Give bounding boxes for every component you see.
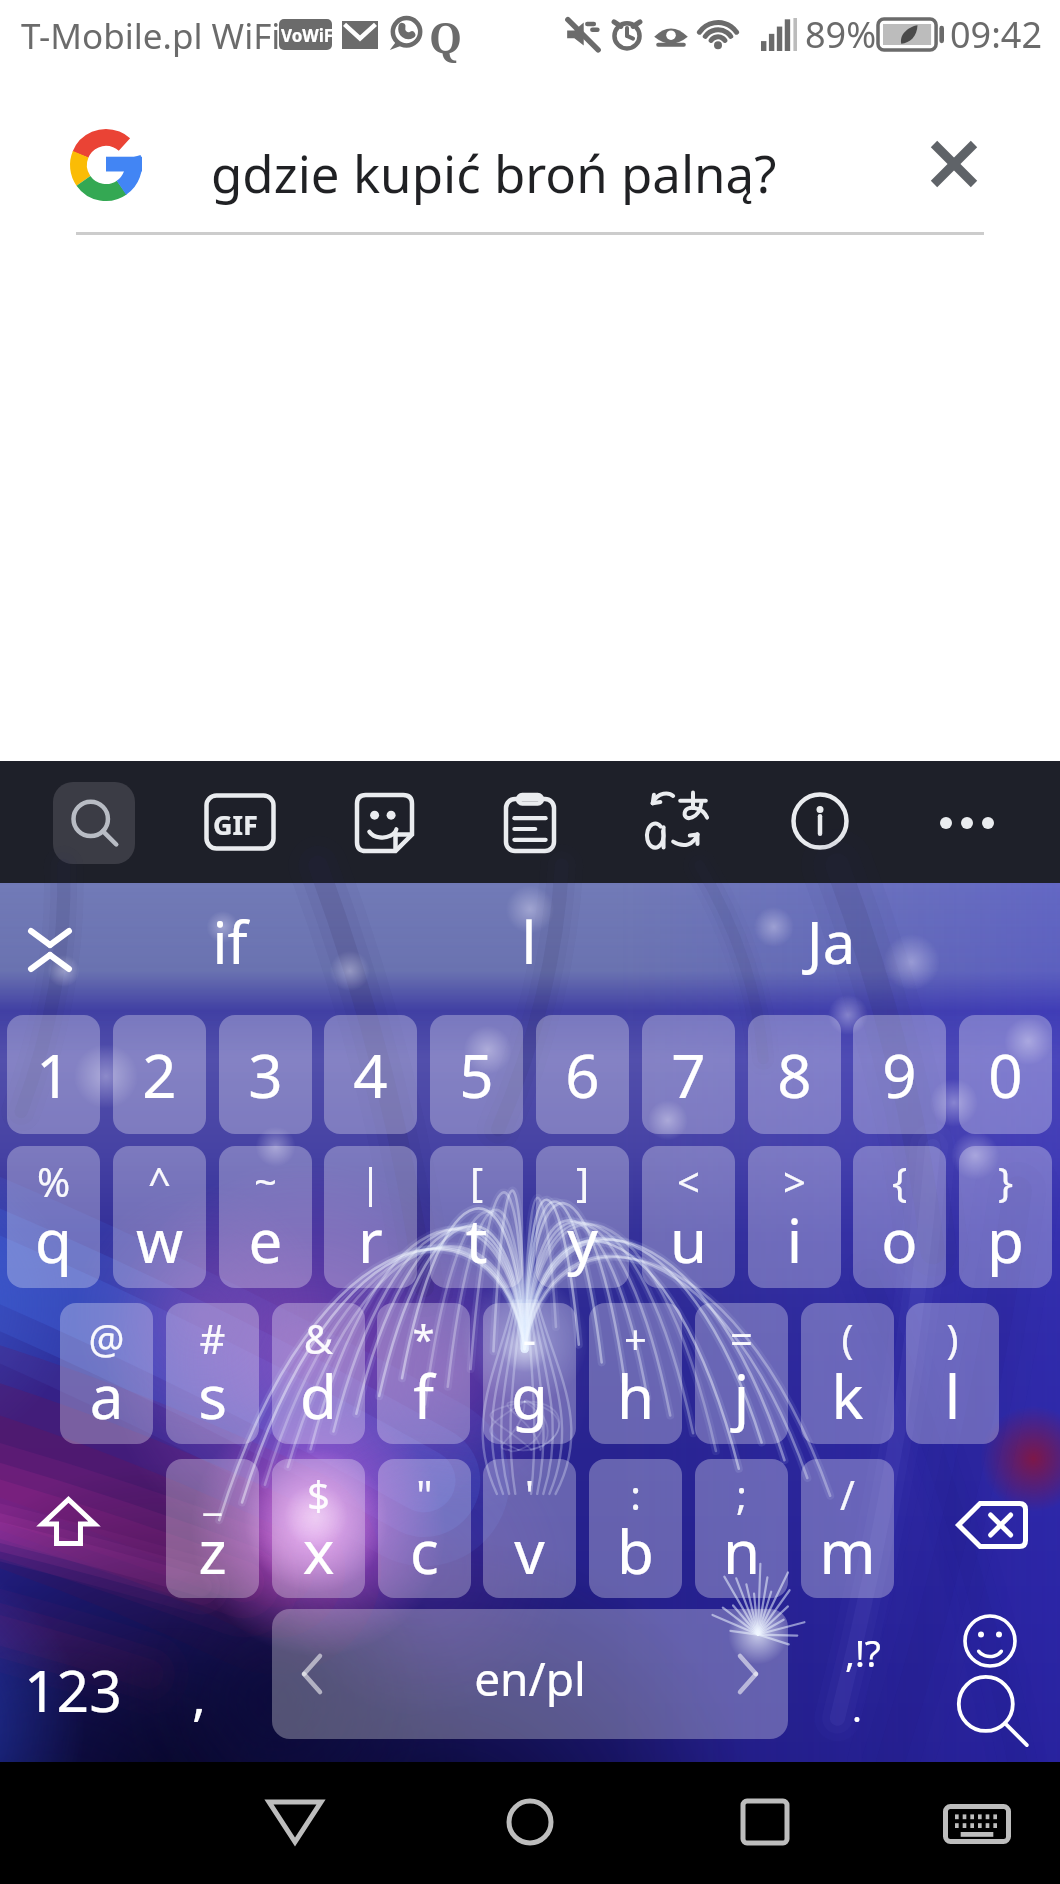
button[interactable]: { [853, 1146, 946, 1288]
staticText: 7 [642, 1034, 735, 1116]
button[interactable]: 7 [642, 1015, 735, 1134]
button[interactable]: More options [932, 789, 1002, 857]
button[interactable]: + [589, 1303, 682, 1444]
staticText: e [219, 1199, 312, 1281]
staticText: a [60, 1355, 153, 1437]
button[interactable]: Recents [740, 1798, 790, 1846]
button[interactable]: - [483, 1303, 576, 1444]
staticText: Q [429, 8, 463, 65]
staticText: p [959, 1199, 1052, 1281]
staticText: q [7, 1199, 100, 1281]
button[interactable]: 2 [113, 1015, 206, 1134]
button[interactable]: 6 [536, 1015, 629, 1134]
button[interactable]: ' [483, 1459, 576, 1598]
button[interactable]: 123 [4, 1609, 144, 1739]
staticText: . [852, 1682, 862, 1732]
button[interactable]: Clipboard [504, 793, 556, 853]
button[interactable]: if [130, 887, 330, 1007]
button[interactable]: 4 [324, 1015, 417, 1134]
staticText: s [166, 1355, 259, 1437]
staticText: * [377, 1311, 470, 1365]
button[interactable]: Hide keyboard [943, 1804, 1011, 1844]
staticText: l [906, 1355, 999, 1437]
staticText: { [853, 1154, 946, 1208]
button[interactable]: ( [801, 1303, 894, 1444]
button[interactable]: Stickers [357, 795, 412, 851]
button[interactable]: Search [53, 782, 135, 864]
button[interactable]: & [272, 1303, 365, 1444]
button[interactable]: ) [906, 1303, 999, 1444]
button[interactable]: l [429, 887, 629, 1007]
staticText: ( [801, 1311, 894, 1365]
staticText: $ [272, 1467, 365, 1521]
staticText: u [642, 1199, 735, 1281]
button[interactable]: " [378, 1459, 471, 1598]
staticText: x [272, 1510, 365, 1592]
button[interactable]: Comma [160, 1609, 256, 1739]
button[interactable]: ~ [219, 1146, 312, 1288]
staticText: / [801, 1467, 894, 1521]
button[interactable]: Backspace [956, 1501, 1028, 1549]
button[interactable]: en/pl [272, 1609, 788, 1739]
staticText: # [166, 1311, 259, 1365]
button[interactable]: [ [430, 1146, 523, 1288]
staticText: : [589, 1467, 682, 1521]
button[interactable]: ] [536, 1146, 629, 1288]
staticText: f [377, 1355, 470, 1437]
button[interactable]: Search [948, 1667, 1032, 1755]
staticText: _ [166, 1467, 259, 1521]
button[interactable]: * [377, 1303, 470, 1444]
button[interactable]: GIF [204, 793, 276, 851]
staticText: < [642, 1154, 735, 1208]
button[interactable]: = [695, 1303, 788, 1444]
button[interactable]: < [642, 1146, 735, 1288]
button[interactable]: Back [266, 1798, 324, 1846]
staticText: 8 [748, 1034, 841, 1116]
button[interactable]: 1 [7, 1015, 100, 1134]
staticText: 0 [959, 1034, 1052, 1116]
staticText: T-Mobile.pl WiFi [21, 12, 281, 60]
staticText: ) [906, 1311, 999, 1365]
button[interactable]: Shift [40, 1496, 97, 1546]
staticText: > [748, 1154, 841, 1208]
staticText: j [695, 1355, 788, 1437]
button[interactable]: } [959, 1146, 1052, 1288]
button[interactable]: 3 [219, 1015, 312, 1134]
button[interactable]: / [801, 1459, 894, 1598]
button[interactable]: _ [166, 1459, 259, 1598]
button[interactable]: ^ [113, 1146, 206, 1288]
button[interactable]: Expand suggestions [20, 915, 80, 985]
button[interactable]: ; [695, 1459, 788, 1598]
button[interactable]: $ [272, 1459, 365, 1598]
staticText: Ja [731, 902, 931, 981]
staticText: b [589, 1510, 682, 1592]
button[interactable]: Clear search [904, 114, 1004, 214]
staticText: gdzie kupić broń palną? [211, 138, 777, 207]
button[interactable]: @ [60, 1303, 153, 1444]
staticText: " [378, 1467, 471, 1521]
button[interactable]: Home [502, 1798, 558, 1846]
staticText: k [801, 1355, 894, 1437]
button[interactable]: : [589, 1459, 682, 1598]
staticText: i [748, 1199, 841, 1281]
staticText: VoWiFi [281, 24, 332, 50]
button[interactable]: Emoji [948, 1605, 1032, 1677]
button[interactable]: 9 [853, 1015, 946, 1134]
button[interactable]: # [166, 1303, 259, 1444]
staticText: 89% [805, 10, 877, 59]
staticText: GIF [213, 806, 258, 843]
staticText: r [324, 1199, 417, 1281]
staticText: m [801, 1510, 894, 1592]
button[interactable]: | [324, 1146, 417, 1288]
button[interactable]: 8 [748, 1015, 841, 1134]
button[interactable]: Ja [731, 887, 931, 1007]
button[interactable]: Info [791, 792, 849, 850]
staticText: ,!? [845, 1627, 881, 1677]
button[interactable]: > [748, 1146, 841, 1288]
staticText: ; [695, 1467, 788, 1521]
button[interactable]: 5 [430, 1015, 523, 1134]
button[interactable]: 0 [959, 1015, 1052, 1134]
button[interactable]: Translate [645, 790, 709, 850]
button[interactable]: Punctuation [810, 1609, 918, 1739]
button[interactable]: % [7, 1146, 100, 1288]
